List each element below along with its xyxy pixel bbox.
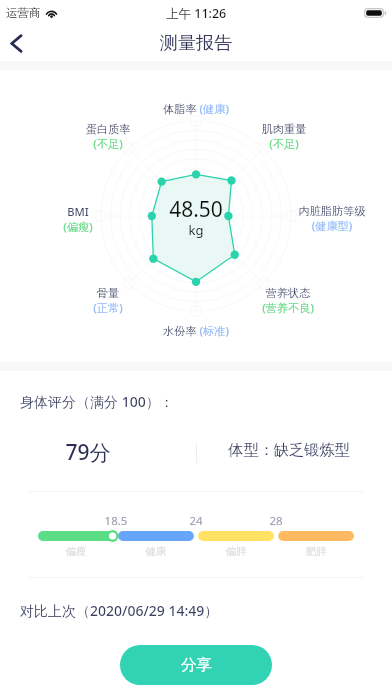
staticText: (不足) xyxy=(214,136,354,151)
staticText: (健康型) xyxy=(262,218,392,233)
staticText: 偏胖 xyxy=(206,545,266,558)
staticText: 24 xyxy=(166,513,226,529)
staticText: 测量报告 xyxy=(160,32,232,55)
staticText: 水份率 (标准) xyxy=(126,323,266,338)
staticText: 蛋白质率 xyxy=(38,122,178,136)
staticText: 骨量 xyxy=(38,286,178,300)
staticText: 28 xyxy=(246,513,306,529)
staticText: 健康 xyxy=(126,545,186,558)
staticText: 运营商 xyxy=(6,6,41,20)
staticText: 对比上次（2020/06/29 14:49） xyxy=(20,601,219,620)
staticText: 体脂率 (健康) xyxy=(126,101,266,116)
staticText: 上午 11:26 xyxy=(166,5,227,22)
button[interactable]: 分享 xyxy=(120,645,272,685)
staticText: (营养不良) xyxy=(218,300,358,315)
staticText: 营养状态 xyxy=(218,286,358,300)
staticText: BMI xyxy=(8,204,148,219)
staticText: 体型：缺乏锻炼型 xyxy=(189,440,389,459)
staticText: 肥胖 xyxy=(286,545,346,558)
staticText: (正常) xyxy=(38,300,178,315)
staticText: 偏瘦 xyxy=(46,545,106,558)
staticText: 48.50 xyxy=(106,195,286,224)
staticText: 79分 xyxy=(8,438,168,467)
staticText: 18.5 xyxy=(86,513,146,529)
staticText: (偏瘦) xyxy=(8,219,148,234)
staticText: kg xyxy=(106,221,286,239)
staticText: (不足) xyxy=(38,136,178,151)
staticText: 身体评分（满分 100）： xyxy=(20,392,174,411)
button[interactable]: Back xyxy=(0,26,42,61)
staticText: 肌肉重量 xyxy=(214,122,354,136)
staticText: 分享 xyxy=(181,655,212,675)
staticText: 内脏脂肪等级 xyxy=(262,204,392,218)
